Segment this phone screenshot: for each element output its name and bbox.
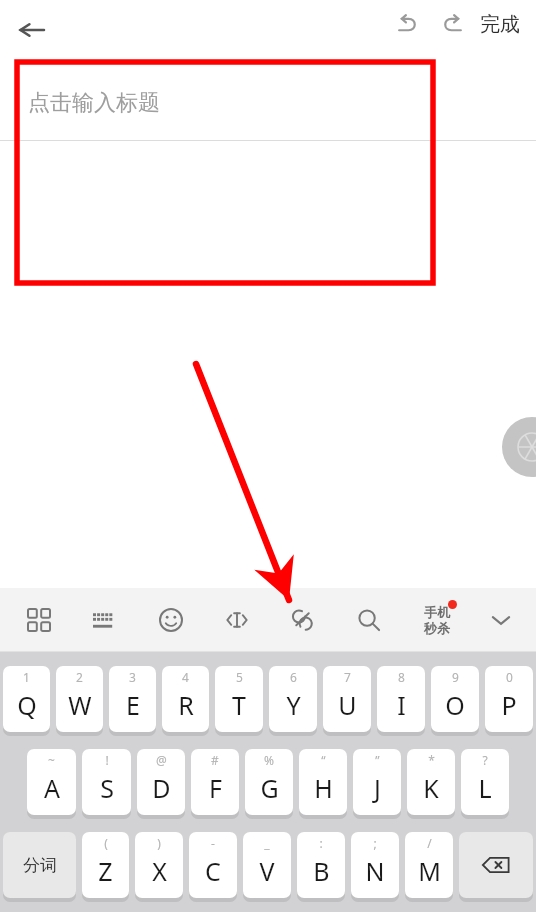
staticText: ) <box>157 835 161 851</box>
button[interactable]: ! <box>82 749 131 815</box>
staticText: ( <box>104 835 108 851</box>
staticText: A <box>44 771 60 805</box>
staticText: 0 <box>506 669 513 685</box>
staticText: O <box>445 688 465 722</box>
staticText: 3 <box>129 669 136 685</box>
button[interactable]: 完成 <box>480 12 520 37</box>
button[interactable]: Search <box>336 588 402 652</box>
staticText: ? <box>482 752 488 768</box>
button[interactable]: ? <box>461 749 509 815</box>
button[interactable]: - <box>189 832 237 898</box>
button[interactable]: Keyboard <box>72 588 138 652</box>
button[interactable]: Redo <box>430 2 474 46</box>
staticText: 点击输入标题 <box>28 89 160 117</box>
staticText: J <box>374 771 381 805</box>
staticText: : <box>319 835 323 851</box>
staticText: X <box>152 854 167 888</box>
staticText: 完成 <box>480 12 520 37</box>
staticText: ; <box>373 835 377 851</box>
staticText: D <box>152 771 171 805</box>
staticText: Y <box>286 688 301 722</box>
staticText: V <box>259 854 275 888</box>
staticText: S <box>100 771 114 805</box>
button[interactable]: % <box>245 749 293 815</box>
staticText: # <box>211 752 219 768</box>
staticText: / <box>427 835 432 851</box>
staticText: - <box>211 835 215 851</box>
staticText: F <box>209 771 222 805</box>
button[interactable]: 7 <box>323 666 371 732</box>
staticText: _ <box>264 835 270 851</box>
button[interactable] <box>0 141 536 581</box>
staticText: 手机 <box>424 604 450 620</box>
staticText: G <box>260 771 279 805</box>
staticText: B <box>313 854 330 888</box>
button[interactable]: @ <box>137 749 185 815</box>
staticText: Q <box>17 688 37 722</box>
staticText: N <box>365 854 385 888</box>
button[interactable]: Clipboard <box>270 588 336 652</box>
staticText: ~ <box>48 752 55 768</box>
staticText: L <box>478 771 492 805</box>
staticText: ! <box>105 752 109 768</box>
button[interactable]: Assistant <box>502 417 536 477</box>
staticText: R <box>178 688 194 722</box>
button[interactable]: ” <box>353 749 401 815</box>
button[interactable]: * <box>407 749 455 815</box>
staticText: M <box>418 854 441 888</box>
button[interactable]: 分词 <box>3 832 76 898</box>
button[interactable] <box>459 832 533 898</box>
other: Backspace <box>459 832 533 900</box>
button[interactable]: Emoji <box>138 588 204 652</box>
button[interactable]: ( <box>82 832 129 898</box>
button[interactable]: 0 <box>485 666 533 732</box>
button[interactable]: 2 <box>56 666 103 732</box>
button[interactable]: # <box>191 749 239 815</box>
staticText: 6 <box>290 669 297 685</box>
staticText: C <box>205 854 221 888</box>
staticText: K <box>423 771 439 805</box>
staticText: 9 <box>452 669 459 685</box>
button[interactable]: 6 <box>269 666 317 732</box>
staticText: P <box>501 688 517 722</box>
staticText: 4 <box>182 669 189 685</box>
staticText: Z <box>98 854 113 888</box>
button[interactable]: _ <box>243 832 291 898</box>
button[interactable]: ) <box>135 832 183 898</box>
button[interactable]: Panels <box>6 588 72 652</box>
staticText: 分词 <box>23 855 57 876</box>
button[interactable]: Edit text <box>204 588 270 652</box>
staticText: T <box>232 688 246 722</box>
button[interactable]: 1 <box>3 666 50 732</box>
button[interactable]: “ <box>299 749 347 815</box>
button[interactable]: 3 <box>109 666 156 732</box>
button[interactable]: Hide keyboard <box>472 588 530 652</box>
button[interactable]: / <box>405 832 453 898</box>
staticText: I <box>397 688 406 722</box>
staticText: 1 <box>23 669 30 685</box>
button[interactable]: 4 <box>162 666 209 732</box>
button[interactable]: 手机 <box>402 588 472 652</box>
staticText: E <box>126 688 140 722</box>
button[interactable]: ~ <box>27 749 76 815</box>
button[interactable]: Undo <box>386 2 430 46</box>
button[interactable]: 9 <box>431 666 479 732</box>
staticText: 5 <box>236 669 243 685</box>
staticText: @ <box>156 752 167 768</box>
staticText: 7 <box>344 669 351 685</box>
button[interactable]: ; <box>351 832 399 898</box>
staticText: ” <box>375 752 380 768</box>
button[interactable]: 点击输入标题 <box>0 66 536 140</box>
staticText: H <box>314 771 333 805</box>
staticText: U <box>338 688 357 722</box>
staticText: * <box>428 752 435 768</box>
staticText: 秒杀 <box>424 620 450 636</box>
button[interactable]: 5 <box>215 666 263 732</box>
staticText: W <box>68 688 92 722</box>
staticText: % <box>264 752 274 768</box>
button[interactable]: : <box>297 832 345 898</box>
staticText: 8 <box>398 669 405 685</box>
button[interactable]: 8 <box>377 666 425 732</box>
staticText: 2 <box>76 669 83 685</box>
button[interactable]: Back <box>10 8 54 52</box>
